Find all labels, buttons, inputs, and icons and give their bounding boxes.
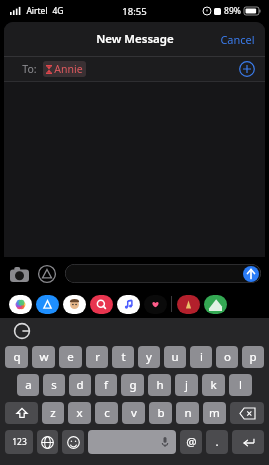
button[interactable]: . bbox=[206, 430, 228, 454]
staticText: l bbox=[239, 377, 242, 393]
staticText: f bbox=[104, 377, 108, 393]
button[interactable]: 123 bbox=[5, 430, 33, 454]
button[interactable]: Emoji bbox=[62, 430, 84, 454]
button[interactable]: Apps bbox=[36, 263, 58, 285]
button[interactable]: Send bbox=[65, 264, 261, 283]
button[interactable]: s bbox=[43, 374, 65, 396]
staticText: w bbox=[39, 349, 49, 365]
button[interactable]: y bbox=[138, 346, 160, 368]
staticText: 123 bbox=[12, 436, 27, 448]
button[interactable]: App 5 bbox=[117, 295, 140, 314]
button[interactable]: z bbox=[42, 402, 64, 424]
staticText: e bbox=[67, 349, 74, 365]
staticText: b bbox=[157, 405, 165, 421]
button[interactable]: App 4 bbox=[90, 295, 113, 314]
button[interactable]: f bbox=[95, 374, 117, 396]
staticText: k bbox=[210, 377, 217, 393]
staticText: Cancel bbox=[220, 32, 255, 47]
button[interactable]: App 1 bbox=[9, 295, 32, 314]
button[interactable]: a bbox=[17, 374, 39, 396]
button[interactable]: o bbox=[216, 346, 238, 368]
button[interactable]: d bbox=[69, 374, 91, 396]
staticText: To: bbox=[22, 62, 37, 76]
button[interactable]: l bbox=[229, 374, 252, 396]
staticText: c bbox=[104, 405, 110, 421]
button[interactable]: Space bbox=[88, 430, 176, 454]
staticText: o bbox=[224, 349, 231, 365]
staticText: m bbox=[209, 405, 220, 421]
staticText: t bbox=[121, 349, 126, 365]
button[interactable]: n bbox=[176, 402, 199, 424]
button[interactable]: App 7 bbox=[177, 295, 200, 314]
button[interactable]: e bbox=[59, 346, 82, 368]
button[interactable]: r bbox=[86, 346, 108, 368]
button[interactable]: x bbox=[68, 402, 91, 424]
staticText: h bbox=[156, 377, 164, 393]
staticText: @ bbox=[186, 434, 197, 450]
staticText: r bbox=[95, 349, 100, 365]
button[interactable]: t bbox=[112, 346, 134, 368]
button[interactable]: g bbox=[121, 374, 144, 396]
staticText: y bbox=[146, 349, 152, 365]
button[interactable]: c bbox=[95, 402, 118, 424]
button[interactable]: k bbox=[202, 374, 225, 396]
button[interactable]: App 2 bbox=[36, 295, 59, 314]
button[interactable]: Cancel bbox=[210, 26, 265, 53]
staticText: j bbox=[185, 377, 188, 393]
button[interactable]: Return bbox=[232, 430, 264, 454]
staticText: u bbox=[171, 349, 179, 365]
staticText: 89% bbox=[224, 5, 241, 17]
button[interactable]: h bbox=[148, 374, 171, 396]
button[interactable]: p bbox=[242, 346, 264, 368]
button[interactable]: Send bbox=[243, 266, 259, 282]
staticText: Annie bbox=[54, 62, 83, 76]
button[interactable]: Switch keyboard bbox=[37, 430, 58, 454]
button[interactable]: App 8 bbox=[204, 295, 227, 314]
staticText: d bbox=[76, 377, 84, 393]
staticText: . bbox=[215, 434, 219, 450]
staticText: x bbox=[76, 405, 83, 421]
staticText: n bbox=[184, 405, 192, 421]
button[interactable]: i bbox=[190, 346, 212, 368]
staticText: s bbox=[51, 377, 57, 393]
button[interactable]: w bbox=[32, 346, 55, 368]
staticText: Airtel bbox=[26, 5, 48, 17]
button[interactable]: Annie bbox=[43, 61, 86, 77]
button[interactable]: u bbox=[164, 346, 186, 368]
staticText: a bbox=[25, 377, 32, 393]
button[interactable]: Add contact bbox=[239, 61, 255, 77]
button[interactable]: Shift bbox=[5, 402, 38, 424]
staticText: z bbox=[50, 405, 56, 421]
button[interactable]: b bbox=[149, 402, 172, 424]
staticText: 4G bbox=[52, 5, 64, 17]
button[interactable]: m bbox=[203, 402, 226, 424]
button[interactable]: v bbox=[122, 402, 145, 424]
button[interactable]: Camera bbox=[8, 263, 30, 285]
button[interactable]: Grammarly bbox=[14, 323, 30, 339]
staticText: v bbox=[131, 405, 137, 421]
staticText: g bbox=[129, 377, 137, 393]
staticText: New Message bbox=[96, 31, 174, 47]
button[interactable]: App 6 bbox=[144, 295, 167, 314]
button[interactable]: q bbox=[5, 346, 28, 368]
staticText: p bbox=[249, 349, 257, 365]
button[interactable]: Backspace bbox=[230, 402, 264, 424]
button[interactable]: @ bbox=[180, 430, 202, 454]
button[interactable]: j bbox=[175, 374, 198, 396]
staticText: q bbox=[13, 349, 21, 365]
staticText: i bbox=[200, 349, 203, 365]
button[interactable]: App 3 bbox=[63, 295, 86, 314]
staticText: 18:55 bbox=[122, 5, 147, 18]
